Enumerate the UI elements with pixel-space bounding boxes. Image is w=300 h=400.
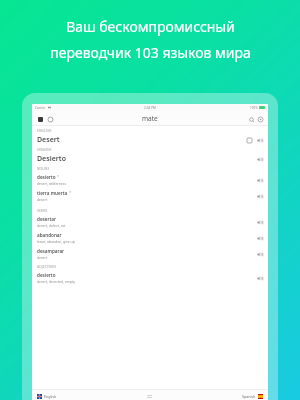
button[interactable]: tierra muerta [32,188,268,204]
staticText: desert [37,255,48,260]
button[interactable]: Play pronunciation [255,192,263,200]
staticText: 100% [250,106,258,110]
button[interactable]: History [46,115,54,123]
button[interactable]: Play pronunciation [255,250,263,258]
button[interactable]: Desert [32,134,268,145]
staticText: mate [142,114,158,123]
staticText: Desierto [37,154,66,164]
button[interactable]: Play pronunciation [255,176,263,184]
staticText: Spanish [242,394,256,399]
button[interactable]: abandonar [32,230,268,246]
button[interactable]: Spanish [242,394,263,399]
staticText: desert, defect, rat [37,223,66,228]
staticText: desert, deserted, empty [37,279,76,284]
staticText: SPANISH [37,148,52,152]
staticText: ENGLISH [37,129,52,133]
button[interactable]: desierto [32,172,268,188]
button[interactable]: Play pronunciation [255,274,263,282]
staticText: tierra muerta [37,190,68,196]
staticText: desamparar [37,248,65,254]
staticText: leave, abandon, give up [37,239,75,244]
button[interactable]: Copy [245,136,253,144]
staticText: desierto [37,272,56,278]
button[interactable]: Play pronunciation [255,218,263,226]
button[interactable]: desierto [32,270,268,286]
staticText: desertar [37,216,57,222]
button[interactable]: desertar [32,214,268,230]
button[interactable]: Menu [36,115,44,123]
button[interactable]: Play pronunciation [255,155,263,163]
staticText: NOUNS [37,167,50,171]
button[interactable]: Play pronunciation [255,136,263,144]
button[interactable]: Play pronunciation [255,234,263,242]
staticText: desert [37,197,48,202]
staticText: ADJECTIVES [37,265,57,269]
staticText: abandonar [37,232,62,238]
staticText: VERBS [37,209,48,213]
button[interactable]: English [37,394,57,399]
staticText: Ваш бескомпромиссный [66,17,235,36]
staticText: * [57,174,59,179]
button[interactable]: Settings [256,115,264,123]
staticText: Desert [37,135,60,145]
staticText: desierto [37,174,56,180]
staticText: Carrier [35,106,46,110]
staticText: * [69,190,71,195]
button[interactable]: Desierto [32,153,268,164]
staticText: переводчик 103 языков мира [50,43,251,62]
button[interactable]: Swap languages [145,392,154,400]
staticText: desert, wilderness [37,181,67,186]
staticText: English [44,394,57,399]
button[interactable]: desamparar [32,246,268,262]
staticText: 2:44 PM [144,106,156,110]
button[interactable]: Search [247,115,255,123]
